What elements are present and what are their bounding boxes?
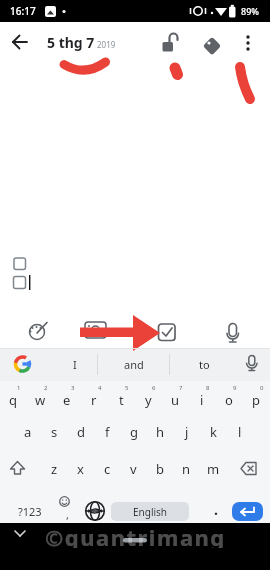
button[interactable] — [156, 30, 182, 56]
staticText: f — [105, 423, 110, 441]
button[interactable]: o — [217, 389, 241, 411]
staticText: l — [238, 423, 242, 441]
staticText: j — [185, 423, 189, 441]
button[interactable]: I — [55, 353, 95, 375]
button[interactable]: k — [201, 421, 225, 443]
button[interactable]: x — [68, 458, 92, 480]
staticText: ?123 — [18, 504, 42, 519]
button[interactable]: h — [148, 421, 172, 443]
staticText: g — [130, 423, 138, 441]
staticText: v — [130, 460, 137, 478]
button[interactable]: a — [16, 421, 40, 443]
staticText: b — [156, 460, 164, 478]
button[interactable]: b — [148, 458, 172, 480]
button[interactable] — [153, 318, 181, 346]
button[interactable] — [236, 455, 266, 481]
staticText: 8 — [206, 384, 210, 392]
staticText: 9 — [233, 384, 237, 392]
staticText: k — [210, 423, 217, 441]
button[interactable]: q — [1, 389, 25, 411]
button[interactable]: t — [109, 389, 133, 411]
button[interactable]: y — [136, 389, 160, 411]
button[interactable] — [6, 28, 34, 56]
button[interactable]: ?123 — [10, 500, 50, 522]
button[interactable]: . — [209, 498, 223, 520]
button[interactable] — [81, 318, 109, 346]
button[interactable]: u — [163, 389, 187, 411]
staticText: to — [199, 357, 210, 372]
button[interactable]: e — [55, 389, 79, 411]
staticText: y — [145, 391, 152, 409]
staticText: English — [133, 505, 168, 519]
staticText: 1 — [17, 384, 21, 392]
button[interactable]: v — [121, 458, 145, 480]
staticText: x — [77, 460, 84, 478]
staticText: 6 — [152, 384, 156, 392]
staticText: u — [171, 391, 180, 409]
button[interactable] — [198, 32, 224, 58]
staticText: e — [63, 391, 71, 409]
staticText: r — [91, 391, 97, 409]
staticText: c — [104, 460, 111, 478]
staticText: m — [207, 460, 220, 478]
staticText: d — [77, 423, 85, 441]
button[interactable]: j — [175, 421, 199, 443]
button[interactable]: m — [201, 458, 225, 480]
button[interactable]: g — [122, 421, 146, 443]
button[interactable]: p — [244, 389, 268, 411]
staticText: o — [225, 391, 233, 409]
button[interactable]: r — [82, 389, 106, 411]
staticText: 89% — [241, 5, 259, 17]
button[interactable]: d — [69, 421, 93, 443]
staticText: t — [119, 391, 124, 409]
button[interactable]: l — [228, 421, 252, 443]
staticText: p — [252, 391, 260, 409]
button[interactable]: c — [95, 458, 119, 480]
button[interactable]: i — [190, 389, 214, 411]
staticText: 0 — [260, 384, 264, 392]
button[interactable]: and — [109, 353, 159, 375]
button[interactable]: f — [95, 421, 119, 443]
staticText: 5 — [125, 384, 129, 392]
staticText: q — [9, 391, 17, 409]
button[interactable] — [219, 318, 247, 346]
staticText: w — [35, 391, 46, 409]
button[interactable]: to — [179, 353, 229, 375]
staticText: i — [200, 391, 204, 409]
staticText: and — [124, 357, 144, 372]
button[interactable]: w — [28, 389, 52, 411]
staticText: n — [182, 460, 191, 478]
button[interactable] — [82, 498, 108, 524]
staticText: ©quantrimang — [45, 522, 226, 548]
button[interactable] — [232, 502, 263, 521]
staticText: 2019 — [97, 39, 116, 50]
button[interactable] — [24, 318, 52, 346]
button[interactable] — [4, 455, 32, 481]
button[interactable]: English — [111, 502, 189, 521]
staticText: 5 thg 7 — [47, 33, 95, 52]
button[interactable]: , — [62, 503, 72, 525]
staticText: z — [51, 460, 58, 478]
staticText: , — [66, 507, 69, 522]
staticText: I — [73, 357, 77, 372]
button[interactable]: n — [174, 458, 198, 480]
staticText: 2 — [44, 384, 48, 392]
staticText: . — [214, 500, 218, 519]
staticText: 7 — [179, 384, 183, 392]
staticText: 4 — [98, 384, 102, 392]
button[interactable]: z — [42, 458, 66, 480]
staticText: 16:17 — [10, 4, 36, 18]
staticText: s — [51, 423, 58, 441]
staticText: a — [24, 423, 32, 441]
staticText: h — [156, 423, 165, 441]
button[interactable]: s — [42, 421, 66, 443]
button[interactable] — [234, 30, 260, 56]
button[interactable] — [8, 352, 36, 378]
button[interactable] — [238, 352, 264, 378]
staticText: 3 — [71, 384, 75, 392]
